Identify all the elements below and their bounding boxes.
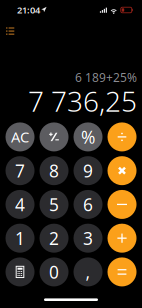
staticText: 0 <box>49 260 59 283</box>
staticText: 1 <box>15 227 25 250</box>
staticText: 3 <box>83 227 93 250</box>
button[interactable]: Plus minus <box>39 122 68 151</box>
staticText: 6 <box>83 193 93 216</box>
button[interactable]: 1 <box>5 224 34 253</box>
button[interactable]: 6 <box>73 190 102 219</box>
button[interactable]: Divide <box>107 122 136 151</box>
button[interactable]: 8 <box>39 156 68 185</box>
button[interactable]: % <box>73 122 102 151</box>
staticText: 2 <box>49 227 59 250</box>
button[interactable]: 3 <box>73 224 102 253</box>
staticText: 6 189+25% <box>75 69 137 85</box>
staticText: , <box>85 260 90 283</box>
staticText: 7 <box>15 159 25 182</box>
staticText: 5 <box>49 193 59 216</box>
button[interactable]: Calculator <box>5 257 34 286</box>
button[interactable]: 0 <box>39 257 68 286</box>
button[interactable]: Multiply <box>107 156 136 185</box>
button[interactable]: 2 <box>39 224 68 253</box>
button[interactable]: Equals <box>107 257 136 286</box>
staticText: 4 <box>15 193 25 216</box>
staticText: % <box>81 125 95 148</box>
button[interactable]: Add <box>107 224 136 253</box>
button[interactable]: History <box>3 24 17 38</box>
button[interactable]: 9 <box>73 156 102 185</box>
button[interactable]: Subtract <box>107 190 136 219</box>
staticText: 9 <box>83 159 93 182</box>
button[interactable]: , <box>73 257 102 286</box>
staticText: 7 736,25 <box>28 82 137 119</box>
staticText: 21:04 <box>17 4 40 16</box>
staticText: 8 <box>49 159 59 182</box>
button[interactable]: AC <box>5 122 34 151</box>
button[interactable]: 7 <box>5 156 34 185</box>
button[interactable]: 5 <box>39 190 68 219</box>
staticText: AC <box>11 127 29 147</box>
button[interactable]: 4 <box>5 190 34 219</box>
